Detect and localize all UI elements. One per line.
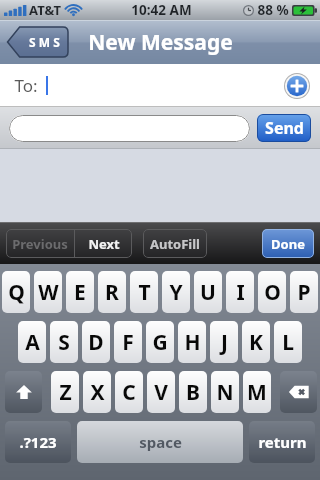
staticText: T [138, 278, 151, 307]
staticText: space [139, 432, 182, 452]
staticText: G [152, 328, 168, 357]
button[interactable]: N [211, 371, 239, 413]
button[interactable]: C [115, 371, 143, 413]
button[interactable]: F [114, 321, 142, 363]
button[interactable]: R [98, 271, 126, 313]
button[interactable]: Shift [5, 371, 42, 413]
staticText: C [122, 378, 136, 407]
staticText: X [90, 378, 105, 407]
button[interactable]: Y [162, 271, 190, 313]
staticText: P [297, 278, 311, 307]
button[interactable]: O [258, 271, 286, 313]
staticText: Z [59, 378, 72, 407]
button[interactable]: Back to SMS [6, 27, 68, 57]
staticText: E [74, 278, 86, 307]
button[interactable]: Backspace [280, 371, 317, 413]
staticText: H [184, 328, 201, 357]
button[interactable]: Message text field [9, 115, 250, 142]
button[interactable]: L [274, 321, 302, 363]
button[interactable]: X [83, 371, 111, 413]
button[interactable]: E [66, 271, 94, 313]
staticText: I [236, 278, 245, 307]
staticText: B [186, 378, 200, 407]
button[interactable]: W [34, 271, 62, 313]
staticText: F [122, 328, 134, 357]
staticText: AT&T [29, 1, 61, 19]
staticText: AutoFill [150, 235, 200, 253]
button[interactable]: J [210, 321, 238, 363]
button[interactable]: Add contact [284, 73, 310, 99]
button[interactable]: H [178, 321, 206, 363]
button[interactable]: T [130, 271, 158, 313]
staticText: S M S [29, 34, 60, 50]
button[interactable]: Send [257, 114, 311, 142]
staticText: V [154, 378, 168, 407]
staticText: D [88, 328, 104, 357]
staticText: J [221, 328, 228, 357]
staticText: A [25, 328, 40, 357]
staticText: Send [265, 117, 304, 139]
button[interactable]: K [242, 321, 270, 363]
staticText: Next [88, 235, 120, 253]
staticText: To: [14, 74, 38, 97]
button[interactable]: M [243, 371, 271, 413]
staticText: .?123 [19, 432, 57, 452]
button[interactable]: G [146, 321, 174, 363]
button[interactable]: V [147, 371, 175, 413]
button[interactable]: D [82, 321, 110, 363]
staticText: New Message [88, 28, 233, 57]
staticText: Previous [12, 235, 68, 253]
staticText: L [282, 328, 294, 357]
button[interactable]: B [179, 371, 207, 413]
staticText: Done [271, 235, 305, 253]
button[interactable]: space [77, 421, 243, 463]
button[interactable]: I [226, 271, 254, 313]
button[interactable]: Q [2, 271, 30, 313]
button[interactable]: Next [75, 229, 132, 258]
button[interactable]: A [18, 321, 46, 363]
button[interactable]: .?123 [5, 421, 71, 463]
button[interactable]: Z [51, 371, 79, 413]
staticText: 88 % [257, 1, 289, 19]
staticText: O [264, 278, 281, 307]
staticText: M [247, 378, 267, 407]
button[interactable]: AutoFill [143, 229, 207, 258]
staticText: W [38, 278, 59, 307]
button[interactable]: U [194, 271, 222, 313]
staticText: Q [8, 278, 25, 307]
staticText: return [258, 432, 307, 452]
button[interactable]: Done [262, 229, 314, 258]
button[interactable]: return [249, 421, 315, 463]
staticText: R [105, 278, 119, 307]
staticText: S [58, 328, 70, 357]
button[interactable]: S [50, 321, 78, 363]
staticText: 10:42 AM [131, 1, 192, 19]
button[interactable]: Previous [6, 229, 74, 258]
button[interactable]: P [290, 271, 318, 313]
staticText: U [200, 278, 216, 307]
staticText: N [216, 378, 234, 407]
staticText: Y [169, 278, 183, 307]
staticText: K [249, 328, 263, 357]
